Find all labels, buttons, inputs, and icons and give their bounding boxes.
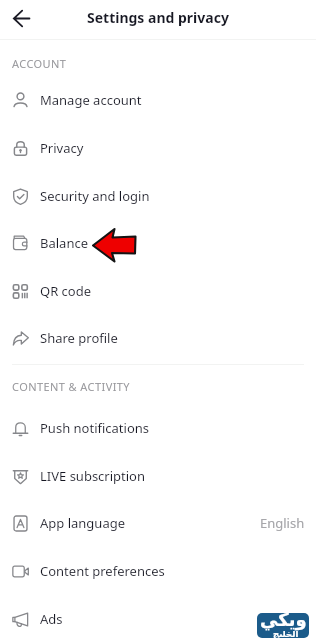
- button[interactable]: Share profile: [0, 314, 316, 362]
- staticText: Privacy: [40, 139, 84, 157]
- button[interactable]: Back: [5, 2, 37, 34]
- staticText: App language: [40, 514, 126, 532]
- button[interactable]: App language: [0, 499, 316, 547]
- staticText: Content preferences: [40, 562, 165, 580]
- staticText: LIVE subscription: [40, 467, 146, 485]
- staticText: ويكي: [260, 613, 307, 630]
- staticText: English: [260, 514, 305, 532]
- staticText: Push notifications: [40, 419, 150, 437]
- button[interactable]: Manage account: [0, 76, 316, 124]
- button[interactable]: Push notifications: [0, 404, 316, 452]
- staticText: الخليج: [273, 629, 299, 638]
- staticText: Settings and privacy: [87, 8, 229, 27]
- button[interactable]: Security and login: [0, 172, 316, 220]
- staticText: QR code: [40, 282, 92, 300]
- staticText: ACCOUNT: [12, 56, 67, 71]
- staticText: Manage account: [40, 91, 142, 109]
- button[interactable]: LIVE subscription: [0, 452, 316, 500]
- staticText: Share profile: [40, 329, 118, 347]
- button[interactable]: Ads: [0, 595, 316, 643]
- button[interactable]: QR code: [0, 267, 316, 315]
- staticText: Balance: [40, 234, 88, 252]
- staticText: Security and login: [40, 187, 150, 205]
- staticText: Ads: [40, 610, 63, 628]
- staticText: CONTENT & ACTIVITY: [12, 379, 130, 394]
- button[interactable]: Privacy: [0, 124, 316, 172]
- button[interactable]: Balance: [0, 219, 316, 267]
- button[interactable]: Content preferences: [0, 547, 316, 595]
